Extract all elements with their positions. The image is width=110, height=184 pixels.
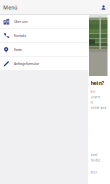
- staticText: re: [91, 101, 94, 104]
- staticText: Menü: [3, 4, 17, 11]
- staticText: rbliche: [91, 158, 101, 162]
- button[interactable]: Über uns: [0, 15, 88, 28]
- button[interactable]: Account: [97, 0, 110, 14]
- button[interactable]: Anfrageformular: [0, 57, 88, 70]
- staticText: dort): [91, 153, 98, 157]
- button[interactable]: Kontakt: [0, 29, 88, 42]
- staticText: Anfrageformular: [14, 61, 39, 66]
- staticText: Karte: [14, 47, 22, 52]
- staticText: ber: [91, 90, 96, 94]
- staticText: ,: [91, 127, 92, 131]
- button[interactable]: Karte: [0, 43, 88, 56]
- staticText: Über uns: [14, 19, 28, 24]
- staticText: rben: [91, 170, 98, 174]
- staticText: hnlich sind: [91, 106, 107, 110]
- staticText: hein?: [91, 79, 105, 86]
- staticText: Kontakt: [14, 33, 26, 38]
- staticText: unsere: [91, 95, 101, 99]
